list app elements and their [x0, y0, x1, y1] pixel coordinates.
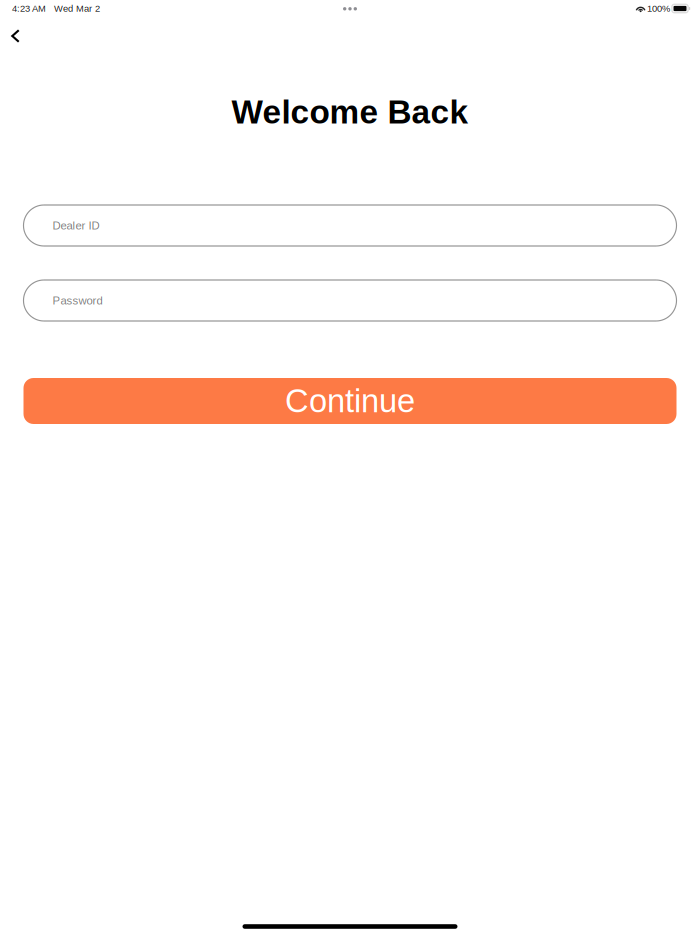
- staticText: Welcome Back: [231, 93, 468, 131]
- staticText: Wed Mar 2: [54, 3, 100, 14]
- staticText: 100%: [647, 3, 670, 14]
- button[interactable]: Password: [23, 280, 676, 321]
- staticText: Continue: [285, 383, 415, 419]
- button[interactable]: Back: [0, 17, 31, 55]
- button[interactable]: Dealer ID: [23, 205, 676, 246]
- staticText: 4:23 AM: [12, 3, 46, 14]
- button[interactable]: Continue: [23, 378, 676, 424]
- staticText: Dealer ID: [52, 219, 99, 232]
- staticText: Password: [52, 294, 102, 307]
